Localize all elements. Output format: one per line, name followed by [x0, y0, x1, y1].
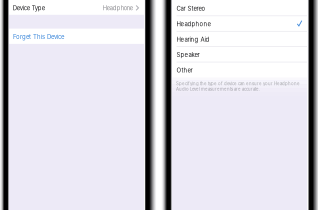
staticText: Headphone [103, 5, 133, 11]
staticText: Car Stereo [177, 5, 206, 12]
staticText: Forget This Device [13, 33, 64, 40]
button[interactable]: Headphone [172, 16, 307, 31]
staticText: Device Type [13, 4, 45, 12]
staticText: Headphone [177, 20, 211, 28]
button[interactable]: Forget This Device [9, 29, 144, 44]
button[interactable]: Other [172, 62, 307, 77]
staticText: Other [177, 67, 193, 74]
staticText: Speaker [177, 51, 200, 59]
staticText: Audio Level measurements are accurate. [176, 87, 260, 92]
button[interactable]: Hearing Aid [172, 31, 307, 47]
staticText: Hearing Aid [177, 36, 210, 43]
button[interactable]: Speaker [172, 47, 307, 62]
button[interactable]: Car Stereo [172, 0, 307, 16]
button[interactable]: Device Type [9, 0, 144, 15]
staticText: Specifying the type of device can ensure… [176, 81, 300, 86]
